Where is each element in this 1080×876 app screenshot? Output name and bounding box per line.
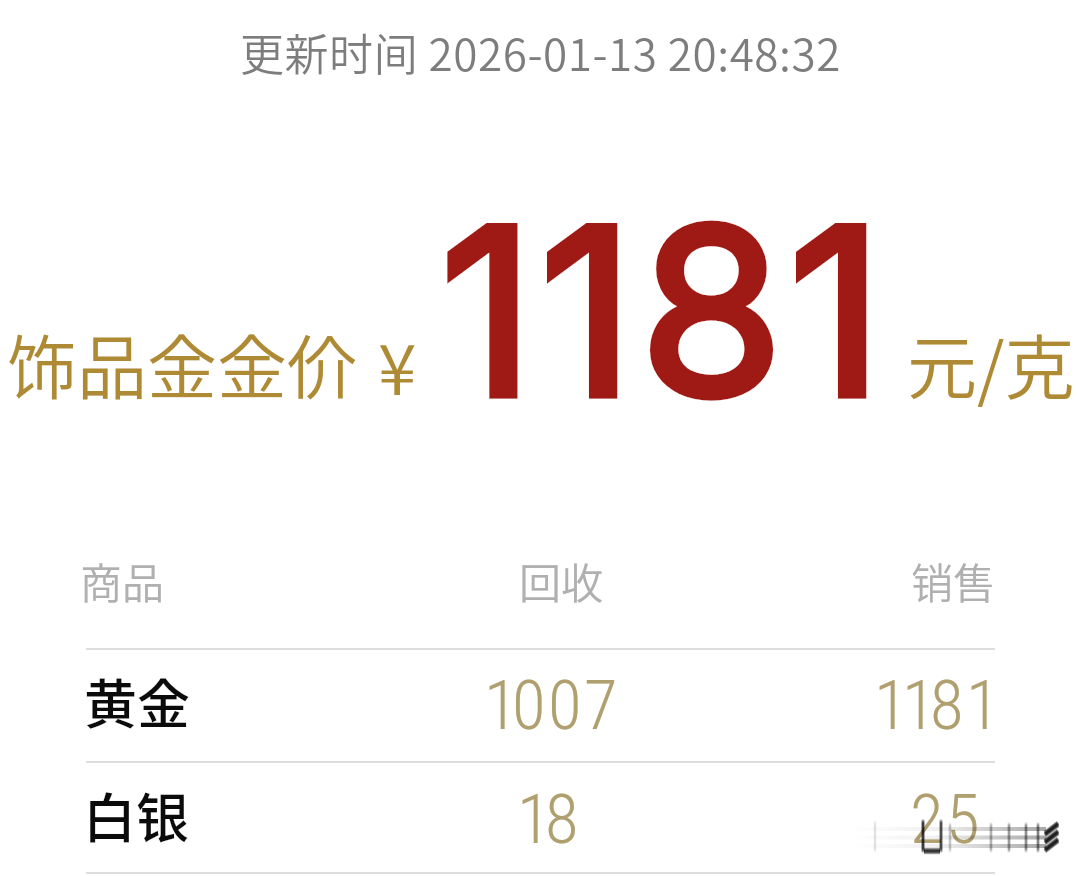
staticText: 5	[946, 779, 980, 860]
staticText: 更新时间 2026-01-13 20:48:32	[240, 20, 841, 84]
staticText: 元/克	[907, 313, 1075, 414]
staticText: 商品	[80, 550, 165, 611]
button[interactable]: 更新时间 2026-01-13 20:48:32	[0, 0, 1080, 104]
staticText: 7	[584, 665, 618, 746]
staticText: 1	[966, 665, 994, 746]
staticText: 8	[930, 665, 964, 746]
staticText: 销售	[911, 550, 996, 611]
staticText: ¥	[378, 314, 417, 415]
staticText: 2	[910, 779, 944, 860]
staticText: 饰品金金价	[7, 313, 357, 414]
staticText: 1	[874, 665, 902, 746]
staticText: 回收	[519, 550, 604, 611]
staticText: 白银	[83, 777, 189, 854]
staticText: 0	[512, 665, 546, 746]
staticText: 1	[902, 665, 930, 746]
staticText: 黄金	[84, 663, 190, 740]
staticText: 1181	[440, 170, 889, 451]
button[interactable]	[86, 763, 995, 872]
staticText: 1	[517, 779, 545, 860]
staticText: 0	[548, 665, 582, 746]
button[interactable]	[86, 650, 995, 761]
staticText: 1	[484, 665, 512, 746]
staticText: 8	[545, 779, 579, 860]
button[interactable]	[0, 190, 1080, 420]
